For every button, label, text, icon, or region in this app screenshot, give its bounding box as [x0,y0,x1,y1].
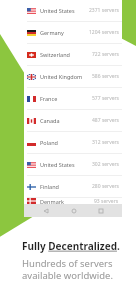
staticText: 487 servers [92,117,119,124]
staticText: Canada [40,117,60,124]
staticText: Switzerland [40,51,70,58]
staticText: 722 servers [92,51,119,58]
button[interactable]: Canada [24,110,122,132]
staticText: France [40,95,58,102]
staticText: 2371 servers [89,7,119,14]
staticText: Hundreds of servers available worldwide. [22,257,113,282]
staticText: 280 servers [92,183,119,190]
staticText: 586 servers [92,73,119,80]
button[interactable]: France [24,88,122,110]
button[interactable]: Back [39,204,52,217]
button[interactable]: Recent apps [94,204,107,217]
staticText: 93 servers [94,198,119,204]
button[interactable]: Finland [24,176,122,198]
staticText: 302 servers [92,161,119,168]
staticText: Germany [40,29,64,36]
staticText: Poland [40,139,58,146]
staticText: United States [40,161,75,168]
button[interactable]: Poland [24,132,122,154]
button[interactable]: Denmark [24,198,122,204]
staticText: United States [40,7,75,14]
staticText: Denmark [40,198,64,204]
button[interactable]: Switzerland [24,44,122,66]
staticText: 1204 servers [89,29,119,36]
staticText: 312 servers [92,139,119,146]
staticText: Fully Decentralized. [22,239,120,253]
button[interactable]: United Kingdom [24,66,122,88]
staticText: United Kingdom [40,73,83,80]
staticText: 577 servers [92,95,119,102]
button[interactable]: Germany [24,22,122,44]
button[interactable]: United States [24,0,122,22]
button[interactable]: United States [24,154,122,176]
staticText: Finland [40,183,59,190]
button[interactable]: Home [67,204,80,217]
